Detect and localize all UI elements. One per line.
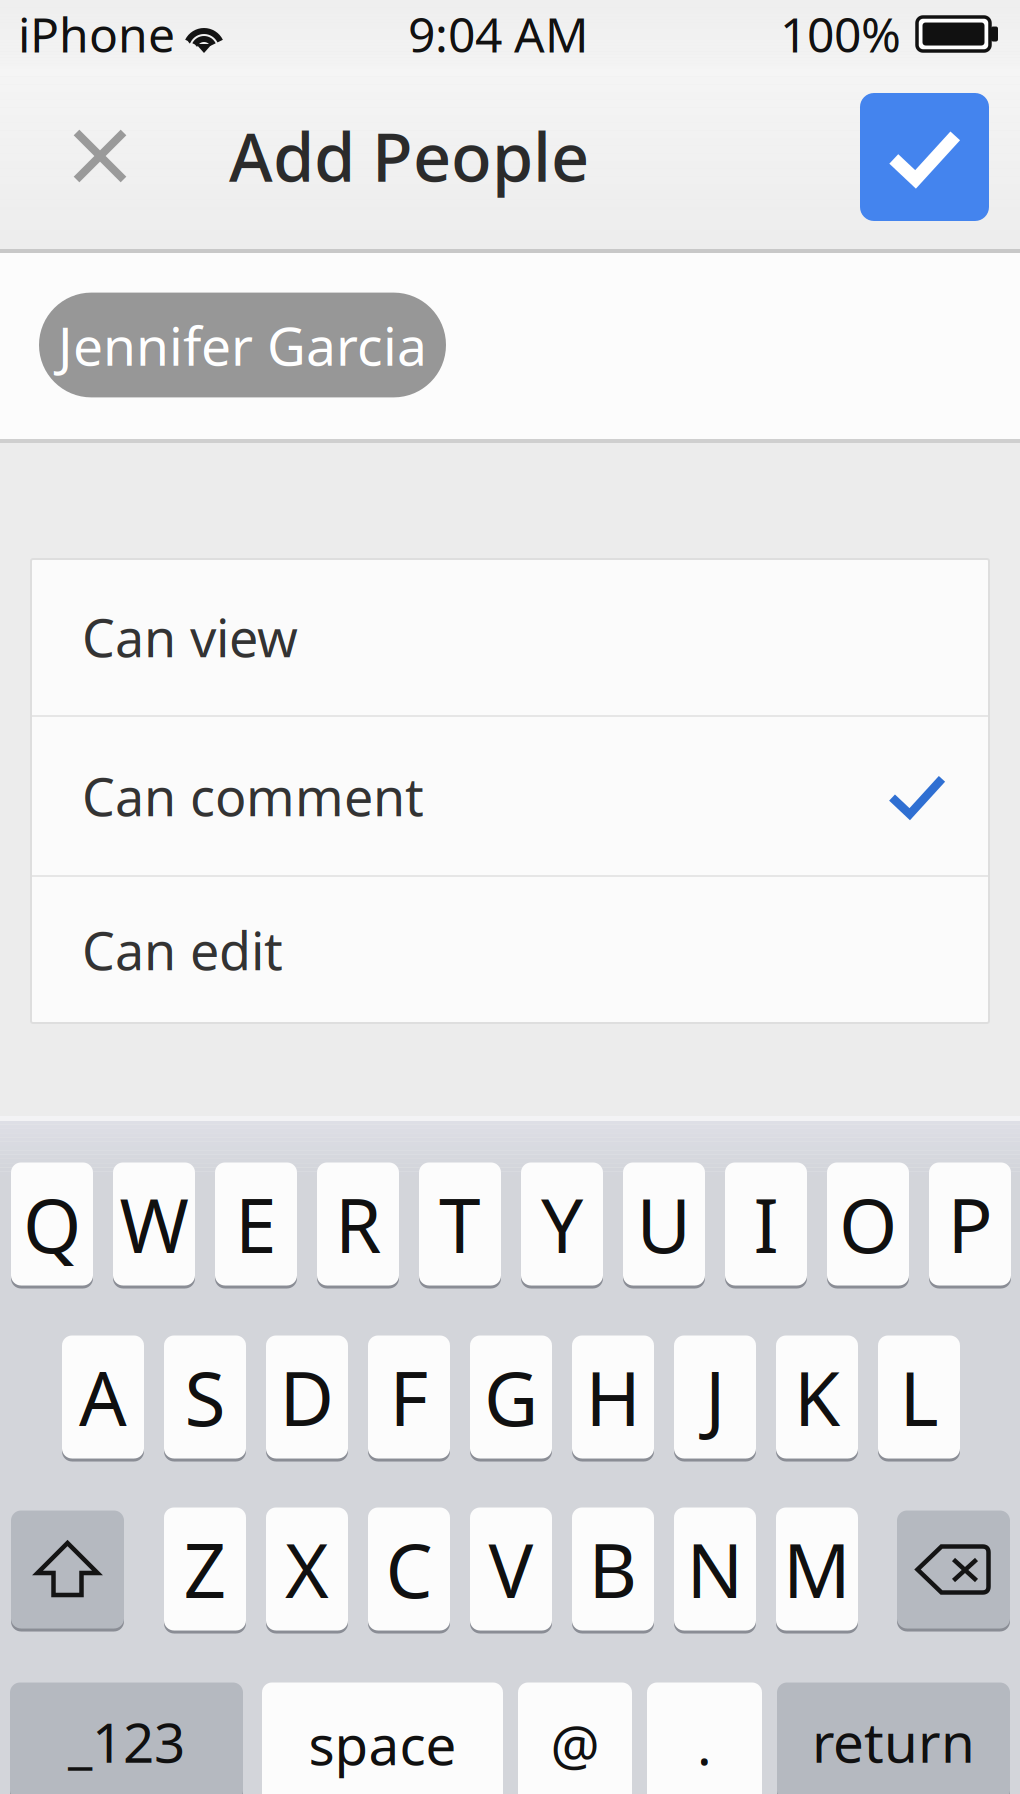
button[interactable]: E (215, 1161, 297, 1287)
staticText: W (119, 1174, 188, 1274)
button[interactable]: Can comment (31, 717, 989, 875)
staticText: Z (183, 1519, 226, 1619)
button[interactable]: Q (11, 1161, 93, 1287)
button[interactable]: Can edit (31, 877, 989, 1023)
button[interactable]: F (368, 1334, 450, 1460)
staticText: 9:04 AM (408, 2, 589, 66)
button[interactable]: D (266, 1334, 348, 1460)
staticText: H (585, 1347, 640, 1447)
button[interactable]: O (827, 1161, 909, 1287)
button[interactable]: Can view (31, 559, 989, 715)
staticText: return (812, 1705, 975, 1778)
button[interactable]: Z (164, 1506, 246, 1632)
button[interactable]: V (470, 1506, 552, 1632)
staticText: S (184, 1347, 225, 1447)
button[interactable]: Close (2, 96, 198, 226)
staticText: . (697, 1708, 712, 1780)
staticText: F (389, 1347, 428, 1447)
staticText: 100% (780, 2, 901, 66)
button[interactable]: P (929, 1161, 1011, 1287)
button[interactable]: W (113, 1161, 195, 1287)
staticText: J (705, 1347, 725, 1447)
staticText: Add People (229, 112, 589, 200)
button[interactable]: . (647, 1681, 762, 1794)
button[interactable]: A (62, 1334, 144, 1460)
button[interactable]: Shift (11, 1509, 124, 1630)
staticText: Can comment (82, 761, 424, 831)
staticText: @ (550, 1708, 599, 1780)
staticText: space (308, 1708, 456, 1780)
staticText: O (839, 1174, 897, 1274)
staticText: T (439, 1174, 481, 1274)
staticText: V (488, 1519, 533, 1619)
button[interactable]: B (572, 1506, 654, 1632)
button[interactable]: R (317, 1161, 399, 1287)
button[interactable]: @ (518, 1681, 632, 1794)
button[interactable]: space (262, 1681, 503, 1794)
staticText: L (899, 1347, 938, 1447)
button[interactable]: N (674, 1506, 756, 1632)
staticText: Can edit (82, 915, 283, 985)
staticText: C (385, 1519, 432, 1619)
staticText: R (335, 1174, 381, 1274)
staticText: Jennifer Garcia (58, 310, 427, 380)
button[interactable]: X (266, 1506, 348, 1632)
staticText: E (235, 1174, 277, 1274)
staticText: iPhone (18, 2, 175, 66)
staticText: I (753, 1174, 778, 1274)
button[interactable]: C (368, 1506, 450, 1632)
button[interactable]: I (725, 1161, 807, 1287)
staticText: K (794, 1347, 840, 1447)
staticText: A (79, 1347, 127, 1447)
button[interactable]: Delete (897, 1509, 1010, 1630)
button[interactable]: M (776, 1506, 858, 1632)
staticText: X (285, 1519, 329, 1619)
button[interactable]: T (419, 1161, 501, 1287)
button[interactable]: H (572, 1334, 654, 1460)
button[interactable]: return (777, 1681, 1010, 1794)
button[interactable]: _123 (10, 1681, 243, 1794)
button[interactable]: J (674, 1334, 756, 1460)
staticText: D (279, 1347, 334, 1447)
staticText: M (783, 1519, 851, 1619)
staticText: Q (23, 1174, 81, 1274)
staticText: _123 (68, 1705, 185, 1778)
button[interactable]: S (164, 1334, 246, 1460)
staticText: B (588, 1519, 637, 1619)
staticText: N (686, 1519, 743, 1619)
button[interactable]: U (623, 1161, 705, 1287)
staticText: G (484, 1347, 538, 1447)
button[interactable]: Y (521, 1161, 603, 1287)
button[interactable]: G (470, 1334, 552, 1460)
button[interactable]: Done (860, 97, 989, 225)
staticText: P (947, 1174, 992, 1274)
button[interactable]: K (776, 1334, 858, 1460)
staticText: Can view (82, 602, 298, 672)
button[interactable]: L (878, 1334, 960, 1460)
staticText: U (636, 1174, 691, 1274)
staticText: Y (541, 1174, 583, 1274)
